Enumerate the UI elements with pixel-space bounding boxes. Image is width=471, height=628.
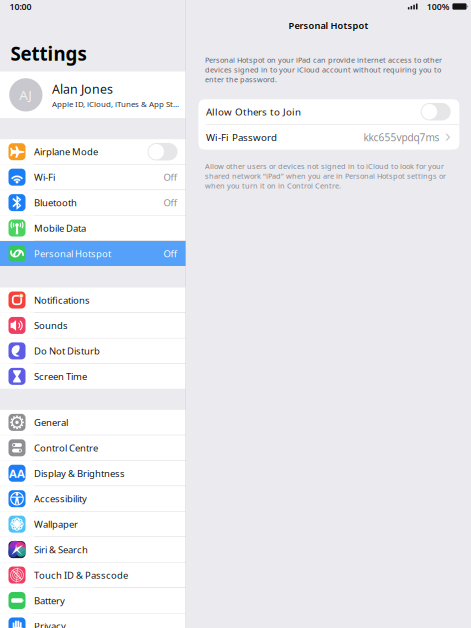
staticText: Touch ID & Passcode [34, 569, 128, 581]
staticText: Siri & Search [34, 543, 88, 556]
staticText: Personal Hotspot on your iPad can provid… [205, 55, 442, 84]
button[interactable]: Control Centre [0, 435, 186, 460]
staticText: Bluetooth [34, 196, 77, 209]
button[interactable]: AJ [0, 71, 186, 118]
staticText: Privacy [34, 620, 66, 628]
button[interactable]: Allow Others to Join [198, 99, 459, 124]
button[interactable]: Wallpaper [0, 512, 186, 537]
button[interactable]: Screen Time [0, 364, 186, 389]
staticText: Allow Others to Join [206, 105, 301, 118]
button[interactable]: Notifications [0, 287, 186, 312]
button[interactable]: Battery [0, 588, 186, 613]
staticText: Display & Brightness [34, 467, 125, 480]
button[interactable]: Wi-Fi [0, 165, 186, 190]
staticText: 100% [427, 1, 450, 12]
button[interactable]: Airplane Mode [0, 139, 186, 164]
button[interactable]: Mobile Data [0, 215, 186, 240]
button[interactable]: General [0, 410, 186, 435]
staticText: Screen Time [34, 370, 87, 383]
button[interactable]: Do Not Disturb [0, 338, 186, 363]
staticText: Alan Jones [52, 81, 113, 97]
staticText: Do Not Disturb [34, 345, 100, 357]
button[interactable]: Touch ID & Passcode [0, 562, 186, 587]
staticText: Battery [34, 594, 65, 607]
staticText: Notifications [34, 294, 90, 306]
button[interactable]: Siri & Search [0, 537, 186, 562]
button[interactable]: Personal Hotspot [0, 241, 186, 266]
staticText: kkc655vpdq7ms [363, 130, 439, 144]
button[interactable]: Privacy [0, 613, 186, 628]
staticText: Wi-Fi Password [206, 131, 277, 144]
staticText: Allow other users or devices not signed … [205, 161, 446, 190]
staticText: Wi-Fi [34, 171, 55, 183]
staticText: Control Centre [34, 441, 98, 454]
staticText: Off [163, 171, 177, 183]
button[interactable]: Accessibility [0, 486, 186, 511]
staticText: Personal Hotspot [34, 247, 111, 260]
staticText: 10:00 [9, 1, 31, 12]
staticText: AA [9, 466, 25, 481]
staticText: General [34, 416, 68, 429]
staticText: Sounds [34, 319, 68, 332]
staticText: Apple ID, iCloud, iTunes & App St... [52, 99, 179, 109]
staticText: Off [163, 196, 177, 209]
staticText: Personal Hotspot [288, 19, 368, 31]
staticText: Wallpaper [34, 518, 78, 530]
staticText: Mobile Data [34, 222, 86, 234]
staticText: AJ [19, 86, 32, 104]
button[interactable]: Bluetooth [0, 190, 186, 215]
staticText: Off [163, 247, 177, 260]
staticText: Settings [10, 41, 86, 66]
staticText: Airplane Mode [34, 145, 98, 158]
staticText: Accessibility [34, 492, 87, 505]
button[interactable]: Sounds [0, 313, 186, 338]
button[interactable]: Wi-Fi Password [198, 125, 459, 150]
button[interactable]: AA [0, 461, 186, 486]
